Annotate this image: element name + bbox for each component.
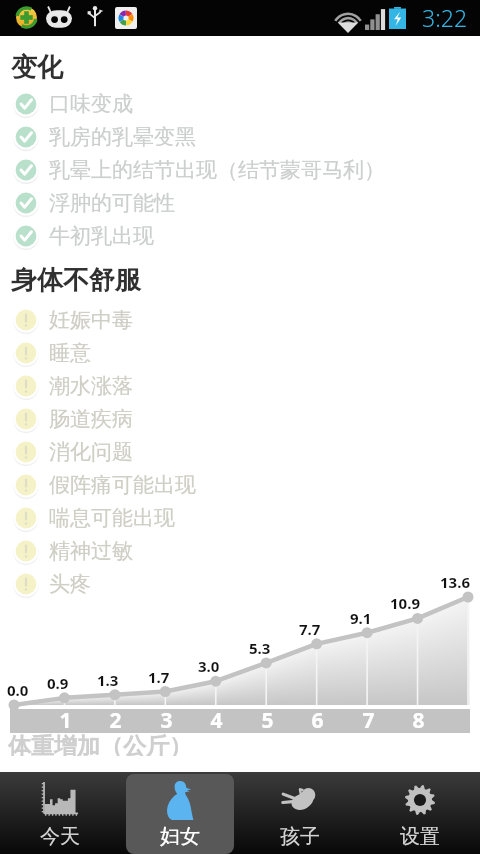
staticText: 3.0 <box>198 656 220 676</box>
button[interactable]: 乳晕上的结节出现（结节蒙哥马利） <box>0 153 480 186</box>
staticText: 乳晕上的结节出现（结节蒙哥马利） <box>49 157 385 183</box>
staticText: 乳房的乳晕变黑 <box>49 124 196 150</box>
button[interactable]: 睡意 <box>0 336 480 369</box>
staticText: 妊娠中毒 <box>49 307 133 333</box>
staticText: 2 <box>109 709 122 730</box>
staticText: 10.9 <box>390 593 420 613</box>
button[interactable]: 设置 <box>360 772 480 854</box>
staticText: 1.7 <box>148 667 170 687</box>
staticText: 精神过敏 <box>49 538 133 564</box>
staticText: 5.3 <box>249 638 271 658</box>
staticText: 1.3 <box>97 670 119 690</box>
button[interactable]: 牛初乳出现 <box>0 219 480 252</box>
button[interactable]: 妇女 <box>120 772 240 854</box>
button[interactable]: 孩子 <box>240 772 360 854</box>
button[interactable]: 消化问题 <box>0 435 480 468</box>
staticText: 3 <box>160 709 173 730</box>
staticText: 9.1 <box>350 608 372 628</box>
staticText: 5 <box>261 709 274 730</box>
staticText: 3:22 <box>422 2 468 33</box>
button[interactable]: 潮水涨落 <box>0 369 480 402</box>
staticText: 0.0 <box>7 680 29 700</box>
staticText: 喘息可能出现 <box>49 505 175 531</box>
staticText: 8 <box>412 709 425 730</box>
staticText: 7 <box>362 709 375 730</box>
staticText: 潮水涨落 <box>49 373 133 399</box>
staticText: 1 <box>59 709 72 730</box>
button[interactable]: 精神过敏 <box>0 534 480 567</box>
staticText: 设置 <box>400 824 440 849</box>
button[interactable]: 今天 <box>0 772 120 854</box>
staticText: 牛初乳出现 <box>49 223 154 249</box>
staticText: 妇女 <box>160 824 200 849</box>
button[interactable]: 乳房的乳晕变黑 <box>0 120 480 153</box>
button[interactable]: 口味变成 <box>0 87 480 120</box>
staticText: 口味变成 <box>49 91 133 117</box>
button[interactable]: 妊娠中毒 <box>0 303 480 336</box>
staticText: 7.7 <box>299 619 321 639</box>
button[interactable]: 假阵痛可能出现 <box>0 468 480 501</box>
staticText: 13.6 <box>440 572 470 592</box>
staticText: 6 <box>311 709 324 730</box>
staticText: 浮肿的可能性 <box>49 190 175 216</box>
staticText: 肠道疾病 <box>49 406 133 432</box>
staticText: 0.9 <box>47 673 69 693</box>
staticText: 孩子 <box>280 824 320 849</box>
button[interactable]: 浮肿的可能性 <box>0 186 480 219</box>
staticText: 消化问题 <box>49 439 133 465</box>
staticText: 身体不舒服 <box>11 264 141 297</box>
staticText: 头疼 <box>49 571 91 597</box>
staticText: 体重增加（公斤） <box>8 733 192 756</box>
staticText: 假阵痛可能出现 <box>49 472 196 498</box>
button[interactable]: 头疼 <box>0 567 480 600</box>
button[interactable]: 肠道疾病 <box>0 402 480 435</box>
button[interactable]: 喘息可能出现 <box>0 501 480 534</box>
staticText: 4 <box>210 709 223 730</box>
staticText: 今天 <box>40 824 80 849</box>
staticText: 睡意 <box>49 340 91 366</box>
staticText: 变化 <box>11 51 63 84</box>
